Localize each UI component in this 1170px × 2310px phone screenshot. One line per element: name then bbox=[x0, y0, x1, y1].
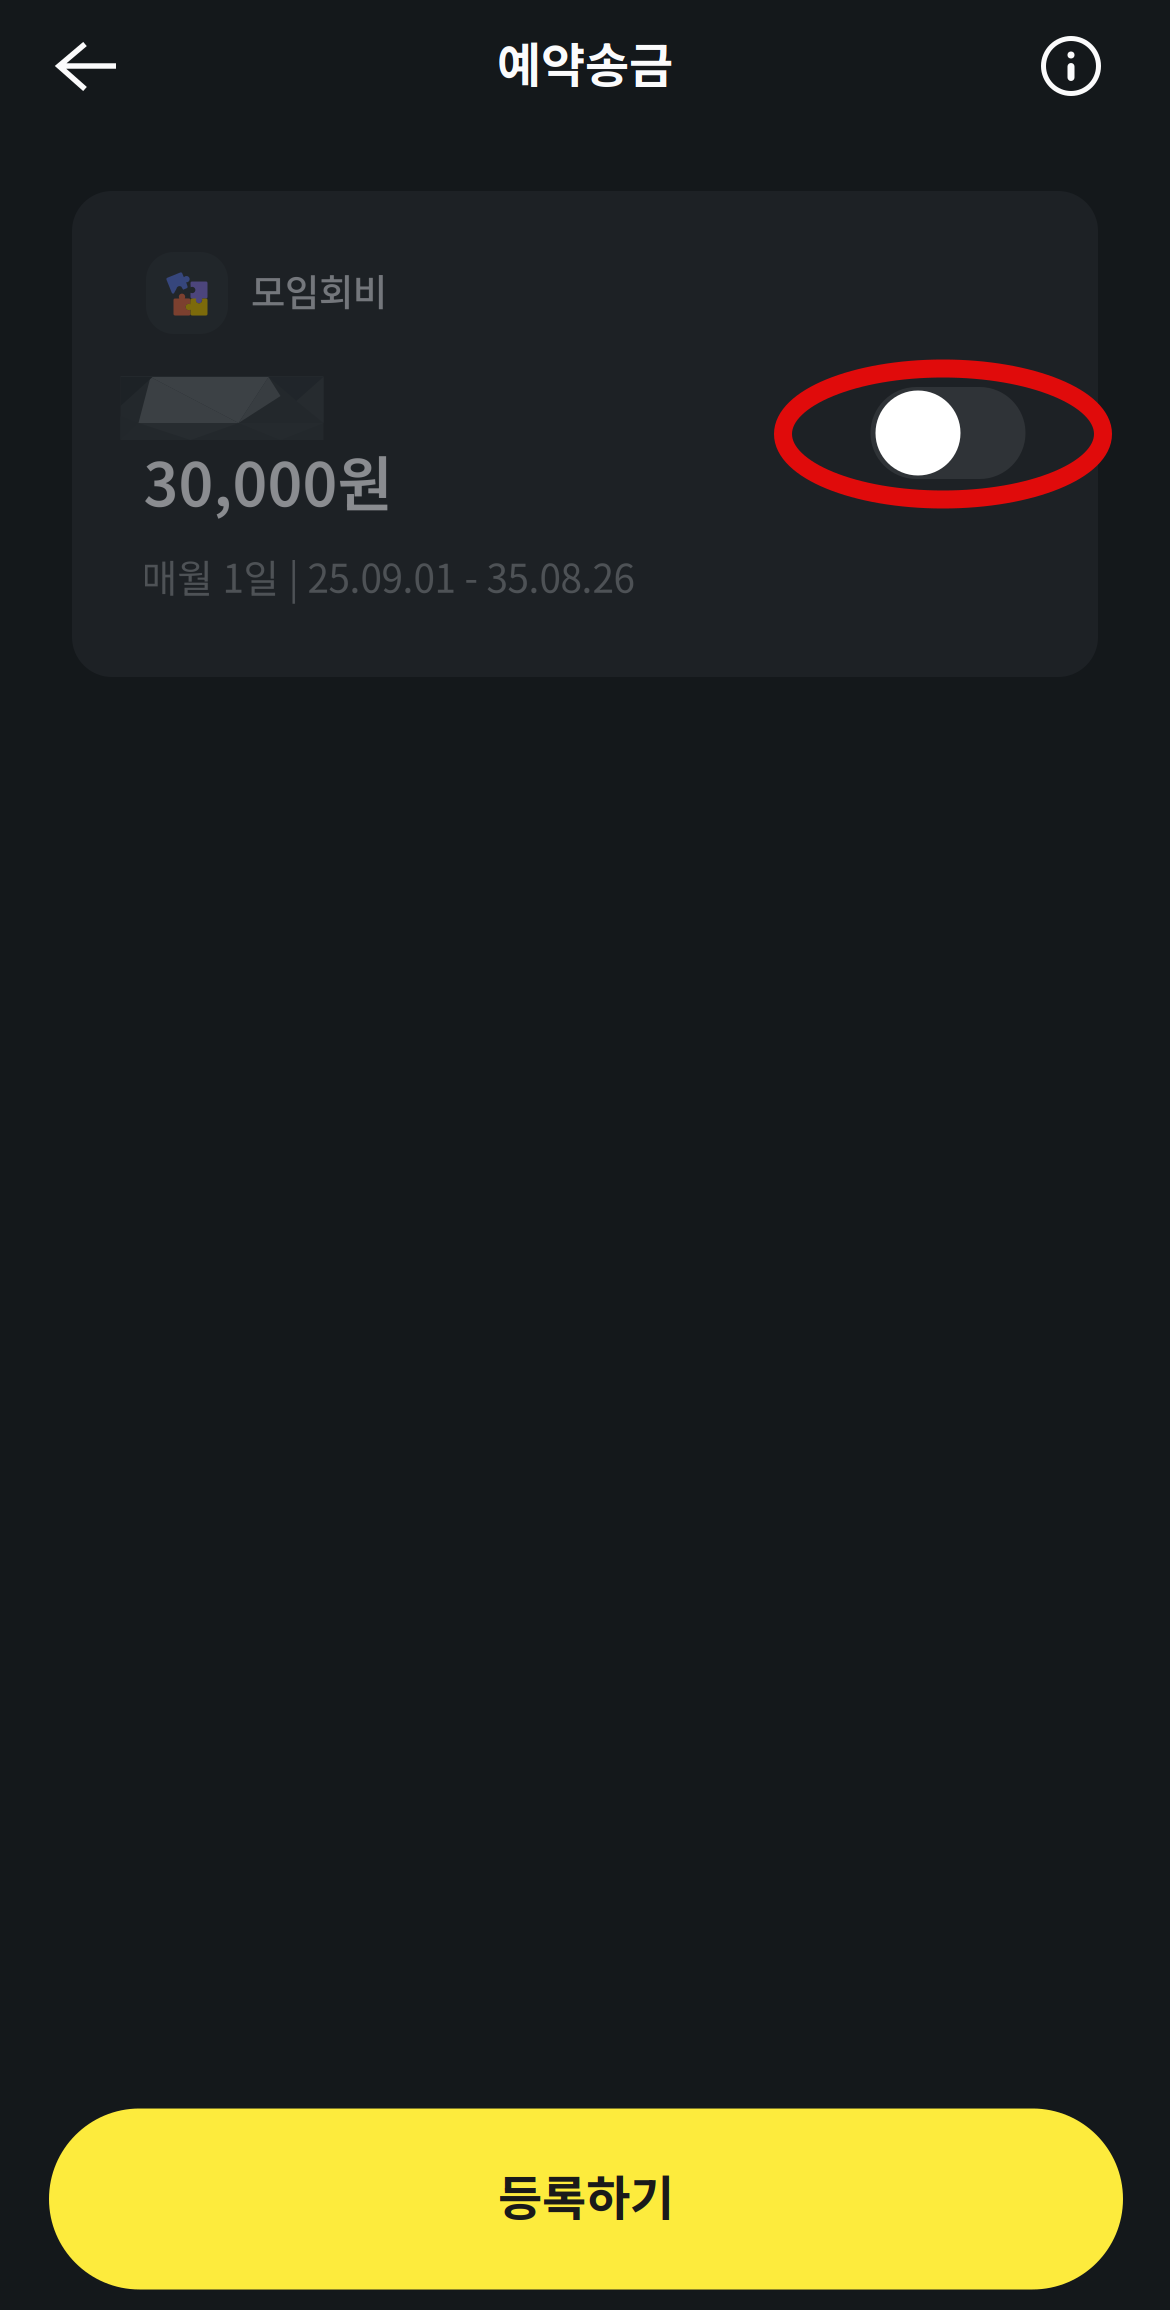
button[interactable]: 예약송금 켜기 bbox=[870, 387, 1025, 479]
staticText: 예약송금 bbox=[497, 27, 673, 97]
button[interactable]: 뒤로 가기 bbox=[28, 12, 148, 122]
staticText: 등록하기 bbox=[498, 2160, 674, 2230]
staticText: 매월 1일 | 25.09.01 - 35.08.26 bbox=[141, 548, 634, 604]
button[interactable]: 안내 bbox=[1021, 16, 1121, 116]
staticText: 30,000원 bbox=[143, 437, 392, 523]
staticText: 모임회비 bbox=[251, 263, 387, 317]
button[interactable]: 등록하기 bbox=[49, 2108, 1123, 2289]
